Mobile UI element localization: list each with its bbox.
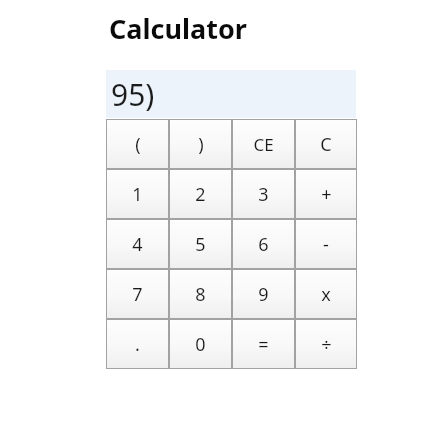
- button[interactable]: 6: [233, 220, 294, 268]
- staticText: (: [135, 132, 141, 157]
- button[interactable]: x: [296, 270, 356, 318]
- staticText: 7: [132, 282, 143, 307]
- button[interactable]: -: [296, 220, 356, 268]
- staticText: Calculator: [109, 10, 247, 47]
- staticText: 95): [111, 74, 155, 115]
- staticText: ÷: [321, 332, 332, 357]
- button[interactable]: 0: [170, 320, 231, 368]
- button[interactable]: +: [296, 170, 356, 218]
- staticText: 5: [195, 232, 206, 257]
- button[interactable]: 5: [170, 220, 231, 268]
- button[interactable]: =: [233, 320, 294, 368]
- button[interactable]: 1: [107, 170, 168, 218]
- button[interactable]: C: [296, 120, 356, 168]
- staticText: =: [258, 332, 269, 357]
- staticText: x: [321, 282, 331, 307]
- staticText: 6: [258, 232, 269, 257]
- staticText: 2: [195, 182, 206, 207]
- staticText: C: [320, 132, 332, 157]
- button[interactable]: (: [107, 120, 168, 168]
- button[interactable]: .: [107, 320, 168, 368]
- staticText: 3: [258, 182, 269, 207]
- staticText: +: [321, 182, 332, 207]
- button[interactable]: 4: [107, 220, 168, 268]
- button[interactable]: CE: [233, 120, 294, 168]
- staticText: CE: [253, 133, 274, 156]
- staticText: -: [323, 232, 329, 257]
- staticText: 0: [195, 332, 206, 357]
- button[interactable]: 9: [233, 270, 294, 318]
- staticText: 9: [258, 282, 269, 307]
- button[interactable]: ): [170, 120, 231, 168]
- staticText: ): [198, 132, 204, 157]
- button[interactable]: 3: [233, 170, 294, 218]
- staticText: 8: [195, 282, 206, 307]
- button[interactable]: 2: [170, 170, 231, 218]
- button[interactable]: 8: [170, 270, 231, 318]
- staticText: 1: [132, 182, 143, 207]
- staticText: 4: [132, 232, 143, 257]
- staticText: .: [135, 332, 140, 357]
- button[interactable]: ÷: [296, 320, 356, 368]
- button[interactable]: 7: [107, 270, 168, 318]
